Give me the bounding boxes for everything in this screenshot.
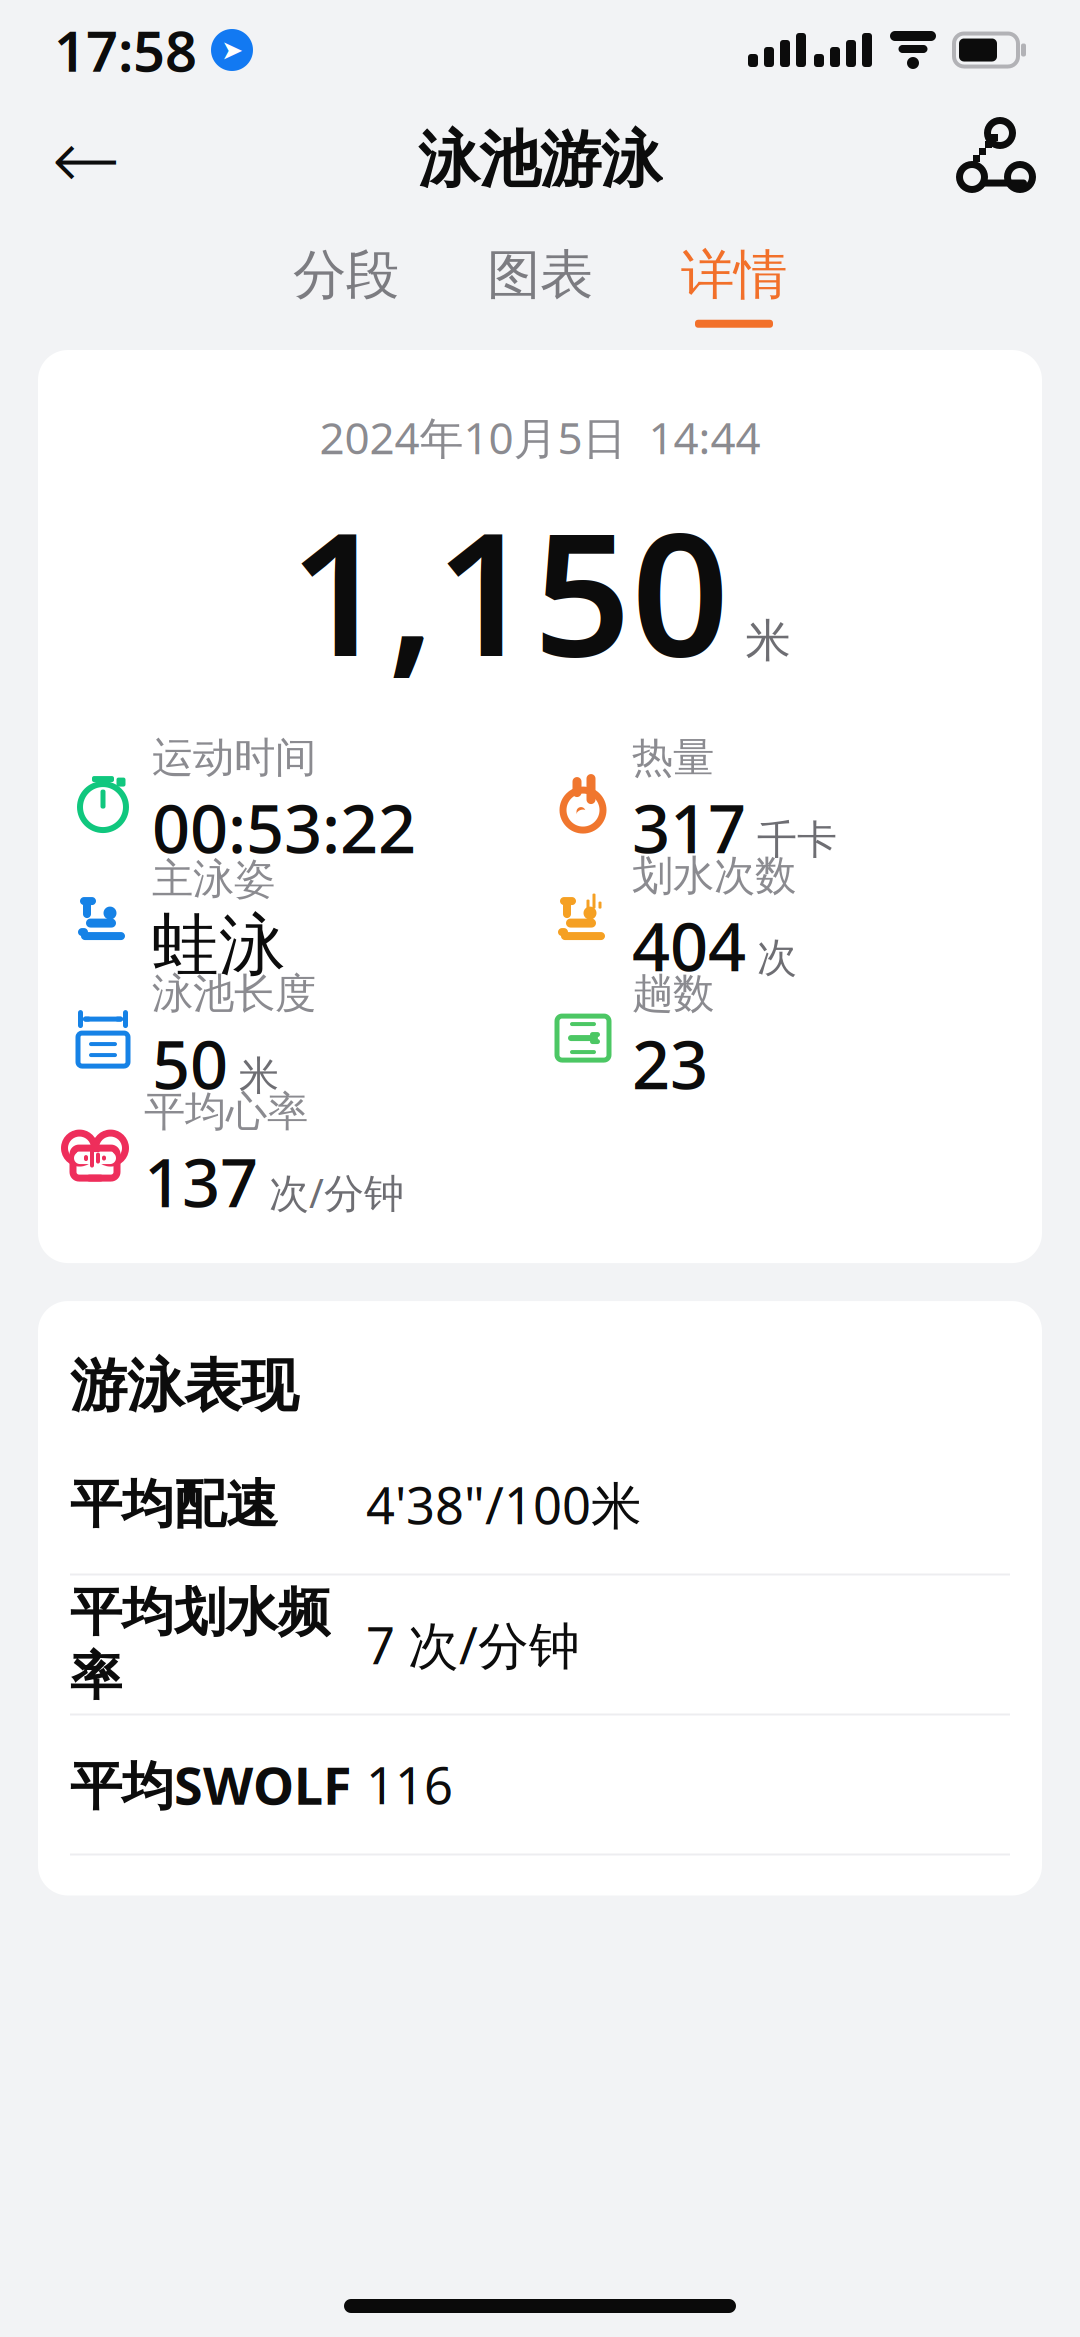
staticText: 4'38"/100米 [366, 1471, 642, 1538]
staticText: 泳池长度 [152, 968, 316, 1019]
staticText: 划水次数 [632, 850, 796, 901]
staticText: ← [51, 113, 120, 207]
staticText: 泳池游泳 [418, 122, 662, 198]
button[interactable]: 分段 [275, 230, 417, 340]
staticText: 137 [144, 1137, 258, 1226]
button[interactable]: 返回 [44, 118, 128, 202]
staticText: 1,150 [289, 476, 729, 703]
staticText: 平均心率 [144, 1086, 308, 1137]
staticText: 米 [239, 1051, 279, 1100]
staticText: 17:58 [54, 13, 197, 87]
staticText: 平均配速 [70, 1473, 278, 1536]
staticText: 00:53:22 [152, 783, 416, 872]
staticText: 23 [632, 1019, 708, 1108]
staticText: 次 [757, 933, 797, 982]
staticText: 404 [632, 901, 746, 990]
staticText: 7 次/分钟 [366, 1611, 580, 1678]
staticText: 平均划水频率 [70, 1581, 330, 1708]
staticText: 千卡 [757, 815, 837, 864]
staticText: 游泳表现 [70, 1351, 298, 1421]
staticText: 图表 [487, 242, 593, 308]
staticText: 运动时间 [152, 732, 316, 783]
staticText: 2024年10月5日 14:44 [319, 408, 760, 466]
staticText: 平均SWOLF [70, 1750, 352, 1819]
button[interactable]: 分享 [952, 118, 1036, 202]
staticText: 次/分钟 [269, 1166, 404, 1219]
staticText: 50 [152, 1019, 228, 1108]
staticText: 主泳姿 [152, 854, 275, 904]
staticText: 米 [745, 613, 790, 669]
staticText: ➤ [221, 35, 243, 65]
staticText: 分段 [293, 242, 399, 308]
staticText: 热量 [632, 732, 714, 783]
button[interactable]: 详情 [663, 230, 805, 340]
button[interactable]: 图表 [469, 230, 611, 340]
staticText: 详情 [681, 242, 787, 308]
staticText: 317 [632, 783, 746, 872]
staticText: 116 [366, 1751, 453, 1818]
staticText: 趟数 [632, 968, 714, 1019]
staticText: 蛙泳 [152, 904, 286, 986]
